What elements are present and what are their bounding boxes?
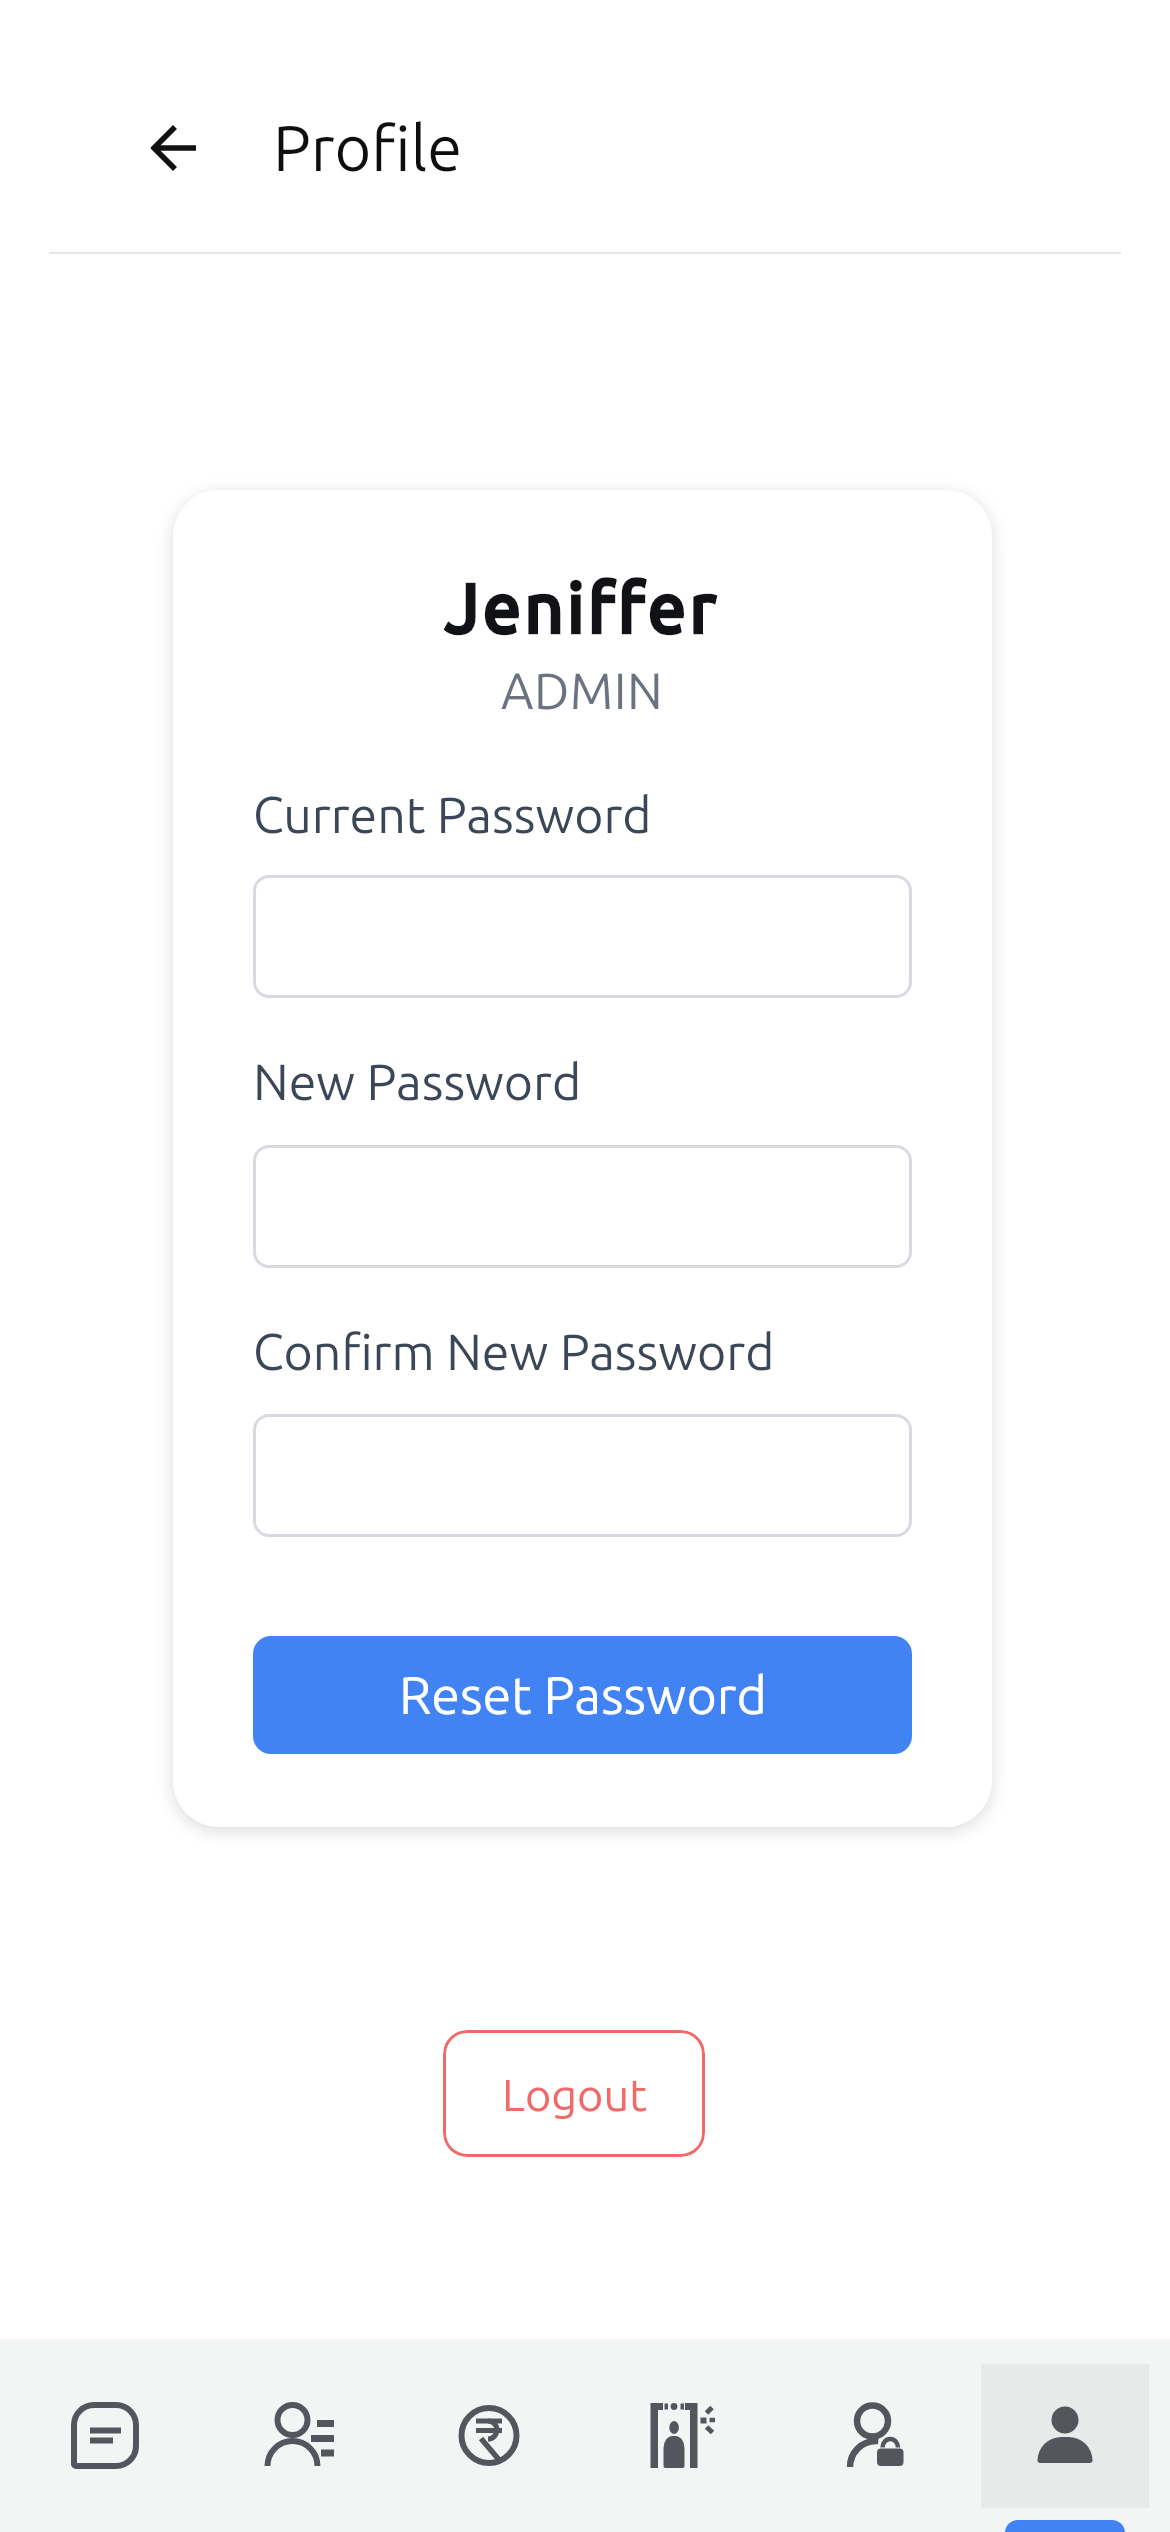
button[interactable]: Logout [443,2030,705,2157]
staticText: Current Password [253,786,652,842]
button[interactable] [143,116,207,180]
staticText: Profile [273,112,462,183]
button[interactable] [780,2339,975,2532]
staticText: Jeniffer [446,570,720,645]
staticText: Jeniffer [446,570,720,645]
button[interactable] [253,1414,912,1537]
button[interactable]: Reset Password [253,1636,912,1754]
button[interactable] [975,2339,1170,2532]
button[interactable] [390,2339,585,2532]
button[interactable] [0,2339,195,2532]
staticText: ADMIN [501,662,664,718]
button[interactable] [585,2339,780,2532]
staticText: New Password [253,1053,582,1109]
button[interactable] [253,1145,912,1268]
staticText: Confirm New Password [253,1323,775,1379]
button[interactable] [195,2339,390,2532]
staticText: Logout [502,2069,647,2119]
button[interactable] [253,875,912,998]
staticText: Reset Password [399,1666,767,1724]
